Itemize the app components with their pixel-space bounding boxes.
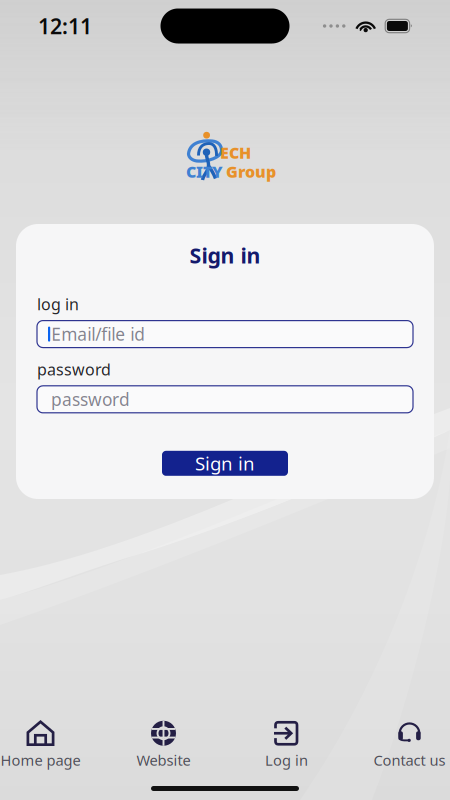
button[interactable]: password xyxy=(37,386,413,413)
button[interactable]: Contact us xyxy=(369,716,450,774)
staticText: Website xyxy=(136,750,190,770)
button[interactable]: Sign in xyxy=(162,451,288,476)
button[interactable]: Home page xyxy=(0,716,81,774)
button[interactable]: Email/file id xyxy=(37,321,413,348)
staticText: Sign in xyxy=(189,241,260,269)
staticText: password xyxy=(51,388,130,411)
staticText: Contact us xyxy=(373,750,445,770)
button[interactable]: Website xyxy=(123,716,204,774)
staticText: 12:11 xyxy=(38,12,92,40)
staticText: Email/file id xyxy=(51,323,145,346)
staticText: CITY xyxy=(186,161,223,182)
staticText: Sign in xyxy=(195,451,255,476)
staticText: log in xyxy=(37,293,79,314)
staticText: Log in xyxy=(265,750,308,770)
staticText: Group xyxy=(226,161,276,182)
staticText: Home page xyxy=(0,750,80,770)
button[interactable]: Log in xyxy=(246,716,327,774)
staticText: password xyxy=(37,359,111,380)
staticText: ECH xyxy=(220,142,251,163)
